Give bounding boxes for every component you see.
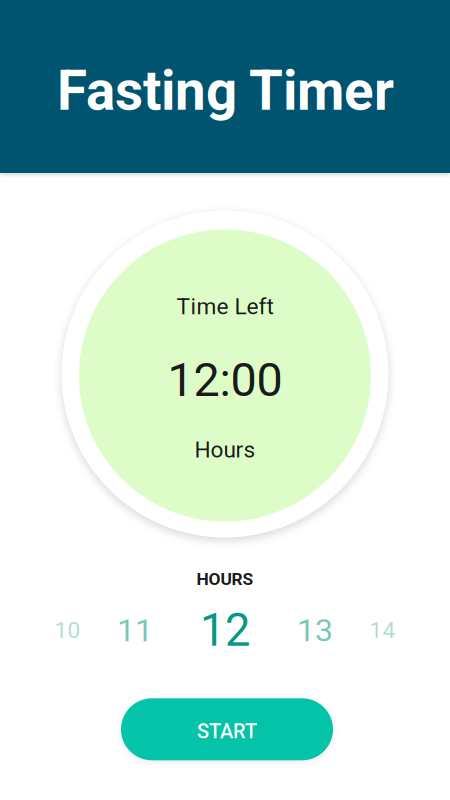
button[interactable]: 11	[101, 604, 168, 656]
button[interactable]: 10	[33, 604, 101, 656]
staticText: 13	[297, 612, 333, 649]
button[interactable]: 14	[348, 604, 416, 656]
staticText: HOURS	[196, 569, 253, 589]
staticText: Time Left	[176, 293, 273, 320]
staticText: Hours	[194, 436, 255, 463]
staticText: 12:00	[167, 353, 282, 407]
staticText: 12	[200, 604, 250, 657]
staticText: START	[197, 720, 257, 743]
staticText: 10	[54, 617, 80, 644]
staticText: 14	[369, 617, 395, 644]
button[interactable]: START	[121, 698, 333, 760]
button[interactable]: 12	[168, 604, 281, 656]
staticText: 11	[117, 612, 153, 649]
staticText: Fasting Timer	[57, 59, 394, 123]
button[interactable]: 13	[281, 604, 348, 656]
